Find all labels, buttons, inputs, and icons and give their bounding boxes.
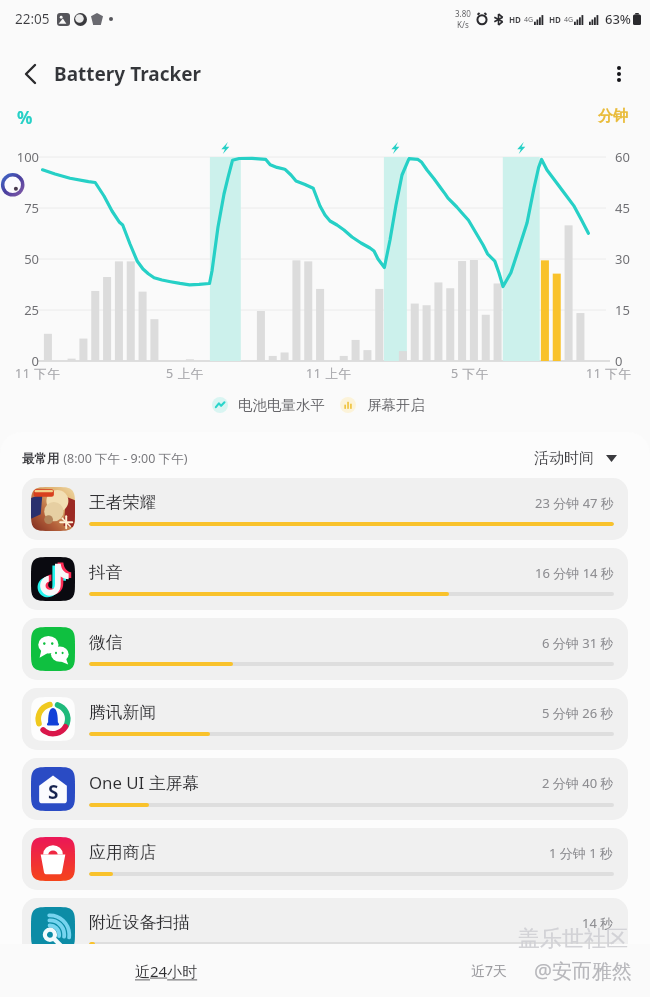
staticText: 0 — [6, 352, 39, 370]
staticText: 活动时间 — [534, 449, 594, 468]
staticText: 屏幕开启 — [367, 396, 425, 414]
staticText: K/s — [457, 19, 469, 30]
button[interactable]: 附近设备扫描 — [22, 898, 628, 944]
staticText: 微信 — [89, 632, 123, 653]
button[interactable]: Back — [8, 52, 52, 96]
staticText: 14 秒 — [582, 914, 614, 932]
button[interactable]: 近24小时 — [128, 956, 205, 986]
staticText: @安而雅然 — [534, 957, 632, 984]
staticText: 2 分钟 40 秒 — [542, 774, 614, 792]
staticText: 最常用 — [22, 451, 60, 467]
button[interactable]: 近7天 — [464, 956, 515, 985]
staticText: 5 分钟 26 秒 — [542, 704, 614, 722]
button[interactable]: More options — [597, 52, 641, 96]
staticText: 60 — [615, 148, 630, 166]
staticText: 4G — [564, 15, 574, 25]
staticText: 王者荣耀 — [89, 492, 157, 513]
button[interactable]: 微信 — [22, 618, 628, 680]
staticText: 75 — [6, 199, 39, 217]
staticText: % — [17, 106, 33, 129]
button[interactable]: 腾讯新闻 — [22, 688, 628, 750]
staticText: 近7天 — [471, 961, 508, 980]
staticText: 分钟 — [598, 107, 628, 126]
staticText: 4G — [524, 15, 534, 25]
staticText: 11 下午 — [15, 365, 61, 382]
staticText: S — [48, 779, 59, 805]
staticText: HD — [509, 14, 521, 25]
staticText: 11 上午 — [306, 365, 352, 382]
staticText: 100 — [6, 148, 39, 166]
staticText: 1 分钟 1 秒 — [549, 844, 614, 862]
staticText: 盖乐世社区 — [518, 925, 628, 953]
staticText: 0 — [615, 352, 623, 370]
staticText: 16 分钟 14 秒 — [535, 564, 614, 582]
staticText: 5 上午 — [166, 365, 204, 382]
staticText: 附近设备扫描 — [89, 912, 190, 933]
staticText: Battery Tracker — [54, 61, 202, 87]
staticText: 11 下午 — [586, 365, 632, 382]
staticText: 45 — [615, 199, 630, 217]
staticText: 近24小时 — [135, 961, 198, 981]
button[interactable]: 王者荣耀 — [22, 478, 628, 540]
staticText: 5 下午 — [451, 365, 489, 382]
staticText: 63% — [605, 10, 631, 28]
staticText: 腾讯新闻 — [89, 702, 157, 723]
button[interactable]: 活动时间 — [534, 445, 617, 472]
staticText: One UI 主屏幕 — [89, 771, 200, 794]
button[interactable]: S — [22, 758, 628, 820]
button[interactable]: 抖音 — [22, 548, 628, 610]
staticText: 15 — [615, 301, 630, 319]
staticText: HD — [549, 14, 561, 25]
staticText: 3.80 — [455, 8, 471, 19]
staticText: 抖音 — [89, 562, 123, 583]
staticText: 6 分钟 31 秒 — [542, 634, 614, 652]
staticText: (8:00 下午 - 9:00 下午) — [60, 450, 188, 467]
staticText: 25 — [6, 301, 39, 319]
staticText: 50 — [6, 250, 39, 268]
button[interactable]: 应用商店 — [22, 828, 628, 890]
staticText: 22:05 — [15, 10, 50, 28]
staticText: 30 — [615, 250, 630, 268]
staticText: 电池电量水平 — [238, 396, 325, 414]
staticText: 23 分钟 47 秒 — [535, 494, 614, 512]
staticText: 应用商店 — [89, 842, 157, 863]
